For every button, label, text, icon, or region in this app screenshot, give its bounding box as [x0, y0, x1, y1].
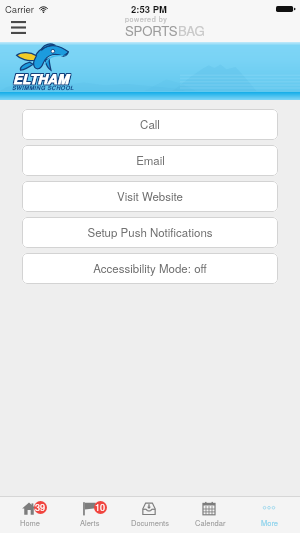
staticText: Documents: [131, 517, 169, 528]
button[interactable]: Email: [22, 145, 278, 176]
staticText: Carrier: [5, 2, 35, 16]
staticText: ELTHAM: [13, 68, 69, 87]
staticText: 2:53 PM: [131, 2, 167, 16]
staticText: ELTHAM: [14, 69, 70, 88]
staticText: ELTHAM: [14, 70, 70, 89]
button[interactable]: More: [240, 497, 300, 533]
button[interactable]: Setup Push Notifications: [22, 217, 278, 248]
staticText: 39: [35, 501, 46, 514]
staticText: SWIMMING SCHOOL: [12, 83, 74, 91]
button[interactable]: 39: [0, 497, 60, 533]
staticText: Accessibility Mode: off: [93, 260, 207, 276]
button[interactable]: Documents: [120, 497, 180, 533]
staticText: ELTHAM: [12, 68, 68, 87]
staticText: Home: [20, 517, 41, 528]
button[interactable]: Call: [22, 109, 278, 140]
button[interactable]: 10: [60, 497, 120, 533]
staticText: Calendar: [195, 517, 226, 528]
staticText: SPORTS: [125, 21, 178, 40]
staticText: Call: [140, 116, 160, 132]
staticText: ELTHAM: [12, 70, 68, 89]
staticText: Alerts: [80, 517, 100, 528]
staticText: ELTHAM: [13, 69, 69, 88]
staticText: Email: [136, 152, 165, 168]
staticText: Visit Website: [117, 188, 183, 204]
staticText: ELTHAM: [13, 70, 69, 89]
staticText: Setup Push Notifications: [87, 224, 213, 240]
button[interactable]: Calendar: [180, 497, 240, 533]
staticText: ELTHAM: [12, 69, 68, 88]
staticText: ELTHAM: [14, 68, 70, 87]
staticText: BAG: [178, 21, 205, 40]
button[interactable]: Menu: [5, 15, 31, 39]
staticText: powered by: [125, 14, 168, 24]
button[interactable]: Accessibility Mode: off: [22, 253, 278, 284]
staticText: More: [261, 517, 279, 528]
button[interactable]: Visit Website: [22, 181, 278, 212]
staticText: 10: [95, 501, 106, 514]
